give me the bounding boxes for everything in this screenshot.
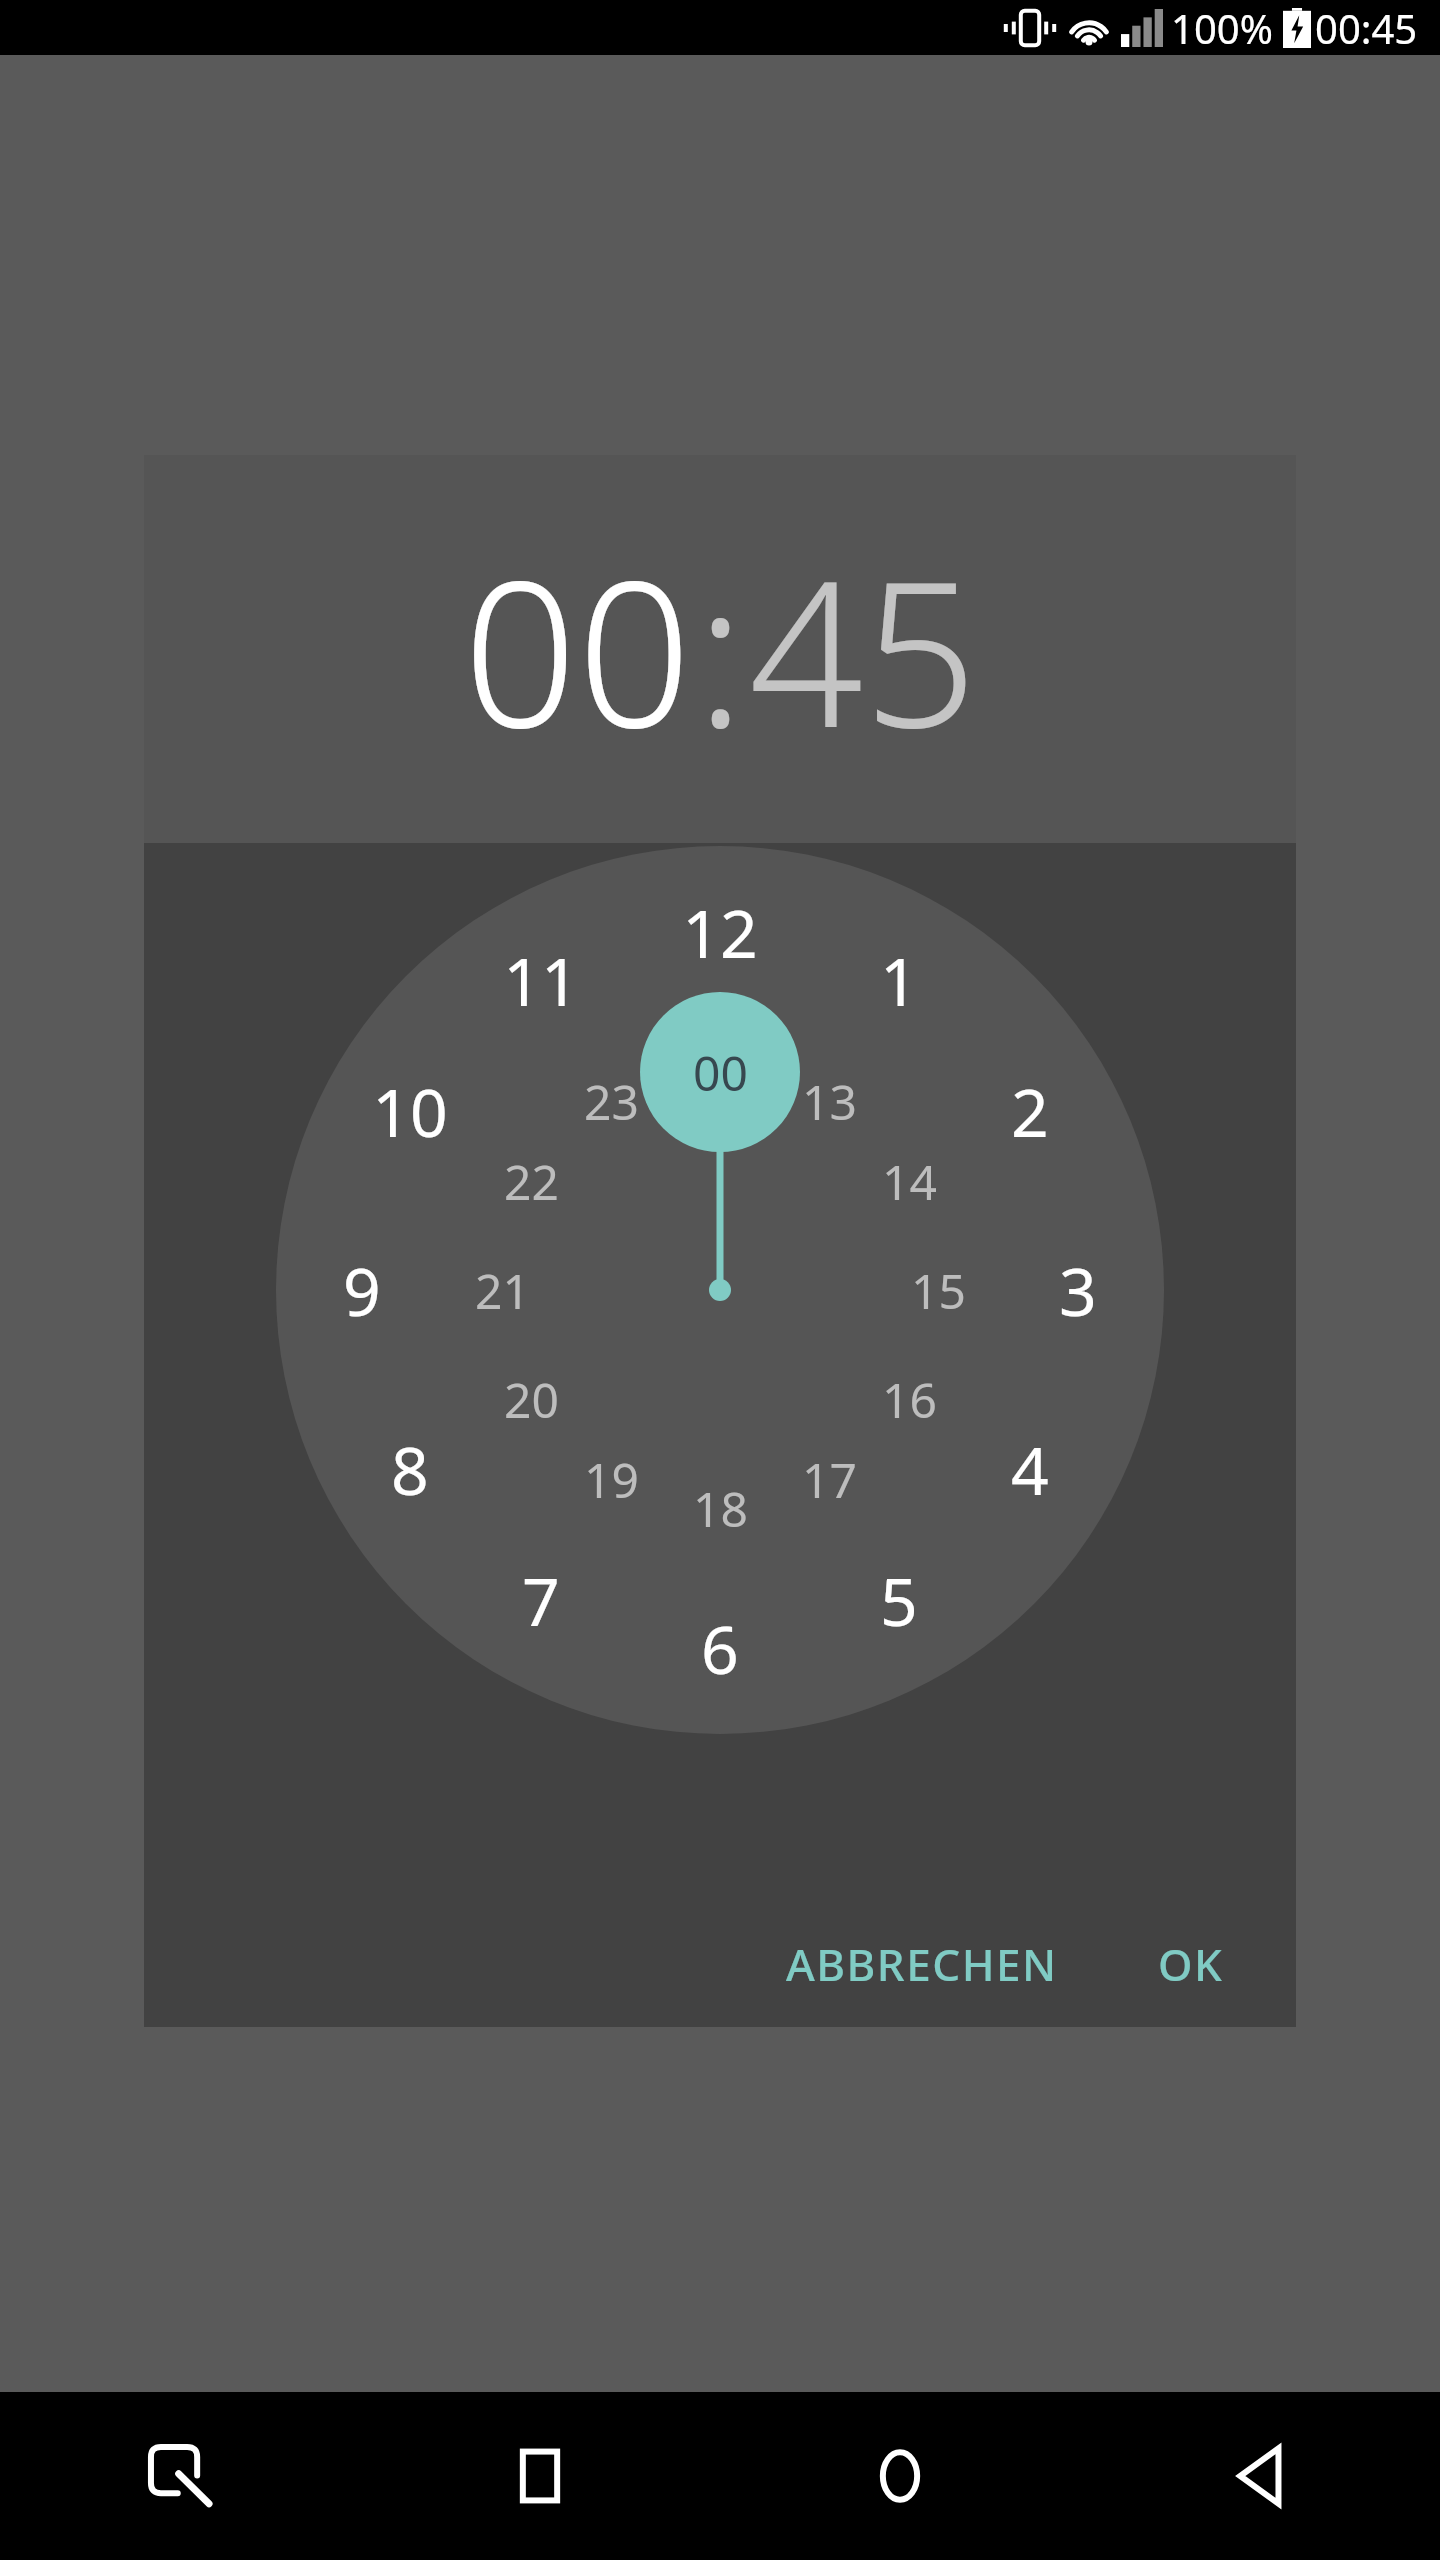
staticText: 16 — [882, 1367, 937, 1432]
staticText: 1 — [880, 935, 918, 1025]
staticText: 6 — [701, 1603, 739, 1693]
staticText: 11 — [503, 935, 579, 1025]
staticText: 45 — [749, 513, 978, 785]
staticText: 5 — [880, 1555, 918, 1645]
staticText: 22 — [504, 1149, 559, 1214]
staticText: : — [696, 513, 745, 785]
staticText: 00 — [693, 1040, 748, 1105]
staticText: 100% — [1171, 1, 1273, 55]
staticText: 9 — [343, 1245, 381, 1335]
staticText: 4 — [1011, 1424, 1049, 1514]
staticText: 19 — [584, 1447, 639, 1512]
staticText: 00 — [463, 513, 692, 785]
staticText: 3 — [1059, 1245, 1097, 1335]
staticText: 00:45 — [1315, 1, 1418, 55]
button[interactable]: OK — [1134, 1916, 1248, 2012]
staticText: 18 — [693, 1476, 748, 1541]
button[interactable]: 00 — [459, 513, 696, 785]
staticText: 12 — [682, 887, 758, 977]
button[interactable]: Home — [720, 2392, 1080, 2560]
staticText: ABBRECHEN — [786, 1934, 1058, 1994]
staticText: OK — [1158, 1934, 1224, 1994]
staticText: 14 — [882, 1149, 937, 1214]
button[interactable]: 45 — [745, 513, 982, 785]
staticText: 13 — [802, 1069, 857, 1134]
button[interactable]: ABBRECHEN — [762, 1916, 1082, 2012]
staticText: 23 — [584, 1069, 639, 1134]
staticText: 10 — [372, 1066, 448, 1156]
button[interactable]: Select hour — [276, 846, 1164, 1734]
button[interactable]: Recent apps — [360, 2392, 720, 2560]
staticText: 21 — [475, 1258, 530, 1323]
button[interactable]: Screenshot — [0, 2392, 360, 2560]
button[interactable]: Back — [1080, 2392, 1440, 2560]
staticText: 17 — [802, 1447, 857, 1512]
staticText: 2 — [1011, 1066, 1049, 1156]
staticText: 8 — [391, 1424, 429, 1514]
staticText: 20 — [504, 1367, 559, 1432]
staticText: 15 — [911, 1258, 966, 1323]
staticText: 7 — [522, 1555, 560, 1645]
